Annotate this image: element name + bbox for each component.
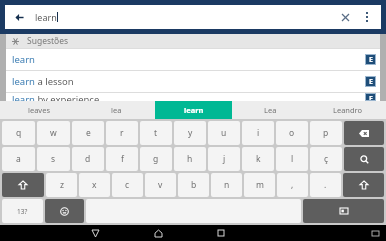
staticText: r: [120, 127, 124, 139]
button[interactable]: learn by experience: [6, 93, 380, 101]
staticText: i: [257, 127, 260, 139]
button[interactable]: Search: [344, 147, 384, 171]
staticText: t: [154, 127, 158, 139]
button[interactable]: l: [276, 147, 308, 171]
staticText: y: [188, 127, 193, 139]
button[interactable]: ç: [310, 147, 342, 171]
staticText: z: [60, 179, 64, 191]
staticText: w: [50, 127, 57, 139]
button[interactable]: 13?: [2, 199, 43, 223]
button[interactable]: Shift: [343, 173, 384, 197]
staticText: n: [224, 179, 230, 191]
button[interactable]: Back: [87, 225, 103, 241]
button[interactable]: k: [242, 147, 274, 171]
button[interactable]: n: [211, 173, 242, 197]
button[interactable]: v: [145, 173, 176, 197]
button[interactable]: lea: [78, 101, 155, 119]
button[interactable]: Backspace: [344, 121, 384, 145]
button[interactable]: c: [112, 173, 143, 197]
button[interactable]: e: [72, 121, 104, 145]
button[interactable]: learn a lesson: [6, 71, 380, 92]
staticText: j: [223, 153, 226, 165]
button[interactable]: Clear: [337, 9, 353, 25]
staticText: u: [221, 127, 227, 139]
button[interactable]: b: [178, 173, 209, 197]
staticText: learn: [184, 105, 204, 115]
staticText: leaves: [28, 105, 51, 115]
staticText: learn by experience: [12, 93, 100, 101]
staticText: m: [256, 179, 264, 191]
staticText: ç: [324, 153, 329, 165]
staticText: q: [16, 127, 22, 139]
button[interactable]: Back: [11, 9, 27, 25]
button[interactable]: i: [242, 121, 274, 145]
staticText: ,: [291, 179, 294, 191]
staticText: E: [369, 55, 373, 64]
staticText: lea: [111, 105, 122, 115]
button[interactable]: ,: [277, 173, 308, 197]
staticText: .: [324, 179, 327, 191]
staticText: learn: [12, 53, 35, 66]
button[interactable]: d: [72, 147, 104, 171]
staticText: 13?: [17, 207, 28, 216]
button[interactable]: Keyboard: [367, 225, 383, 241]
button[interactable]: Home: [150, 225, 166, 241]
staticText: E: [369, 77, 373, 86]
button[interactable]: Enter: [303, 199, 384, 223]
staticText: d: [85, 153, 91, 165]
button[interactable]: q: [2, 121, 35, 145]
staticText: Lea: [264, 105, 277, 115]
staticText: c: [125, 179, 130, 191]
button[interactable]: Leandro: [309, 101, 386, 119]
staticText: learn: [35, 11, 57, 23]
button[interactable]: leaves: [0, 101, 78, 119]
button[interactable]: u: [208, 121, 240, 145]
staticText: l: [291, 153, 294, 165]
staticText: s: [51, 153, 56, 165]
staticText: k: [256, 153, 261, 165]
button[interactable]: y: [174, 121, 206, 145]
button[interactable]: learn: [155, 101, 232, 119]
button[interactable]: More options: [359, 9, 375, 25]
button[interactable]: x: [79, 173, 110, 197]
staticText: h: [187, 153, 193, 165]
staticText: b: [191, 179, 197, 191]
button[interactable]: r: [106, 121, 138, 145]
button[interactable]: j: [208, 147, 240, 171]
button[interactable]: Lea: [232, 101, 309, 119]
staticText: x: [92, 179, 97, 191]
button[interactable]: g: [140, 147, 172, 171]
staticText: f: [121, 153, 124, 165]
staticText: e: [86, 127, 91, 139]
staticText: v: [158, 179, 163, 191]
button[interactable]: Emoji: [45, 199, 84, 223]
button[interactable]: a: [2, 147, 35, 171]
staticText: a: [16, 153, 21, 165]
button[interactable]: Recents: [213, 225, 229, 241]
staticText: g: [153, 153, 159, 165]
staticText: Leandro: [333, 105, 363, 115]
button[interactable]: t: [140, 121, 172, 145]
button[interactable]: p: [310, 121, 342, 145]
staticText: Sugestões: [27, 35, 69, 47]
button[interactable]: w: [37, 121, 70, 145]
staticText: p: [323, 127, 329, 139]
button[interactable]: h: [174, 147, 206, 171]
button[interactable]: s: [37, 147, 70, 171]
staticText: E: [369, 94, 373, 100]
button[interactable]: m: [244, 173, 275, 197]
button[interactable]: f: [106, 147, 138, 171]
button[interactable]: Shift: [2, 173, 44, 197]
button[interactable]: o: [276, 121, 308, 145]
staticText: learn a lesson: [12, 75, 74, 88]
staticText: o: [289, 127, 295, 139]
button[interactable]: z: [46, 173, 77, 197]
button[interactable]: .: [310, 173, 341, 197]
button[interactable]: learn: [6, 49, 380, 70]
